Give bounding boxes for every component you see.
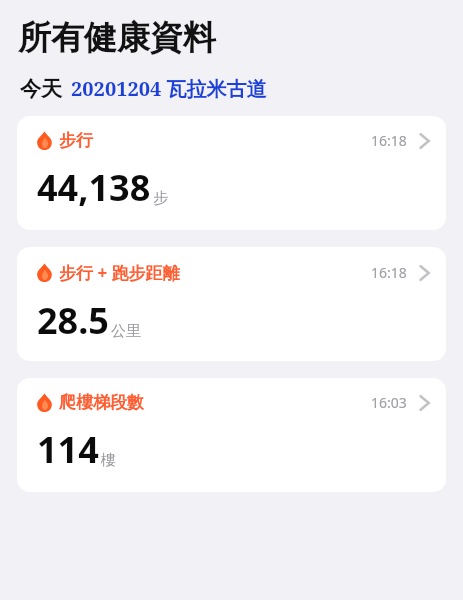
staticText: 所有健康資料 — [18, 17, 216, 59]
staticText: 公里 — [111, 322, 141, 341]
button[interactable]: 步行 — [17, 116, 446, 230]
staticText: 16:03 — [371, 393, 407, 412]
staticText: 114 — [37, 425, 99, 474]
staticText: 16:18 — [371, 131, 407, 150]
staticText: 16:18 — [371, 263, 407, 282]
staticText: 44,138 — [37, 163, 151, 212]
staticText: 今天 — [20, 76, 62, 102]
staticText: 20201204 瓦拉米古道 — [71, 75, 267, 102]
staticText: 步 — [153, 189, 168, 208]
staticText: 爬樓梯段數 — [59, 392, 144, 413]
staticText: 樓 — [101, 451, 116, 470]
button[interactable]: 步行 + 跑步距離 — [17, 247, 446, 361]
staticText: 步行 + 跑步距離 — [59, 261, 180, 284]
staticText: 步行 — [59, 130, 93, 151]
button[interactable]: 爬樓梯段數 — [17, 378, 446, 492]
staticText: 28.5 — [37, 296, 109, 345]
